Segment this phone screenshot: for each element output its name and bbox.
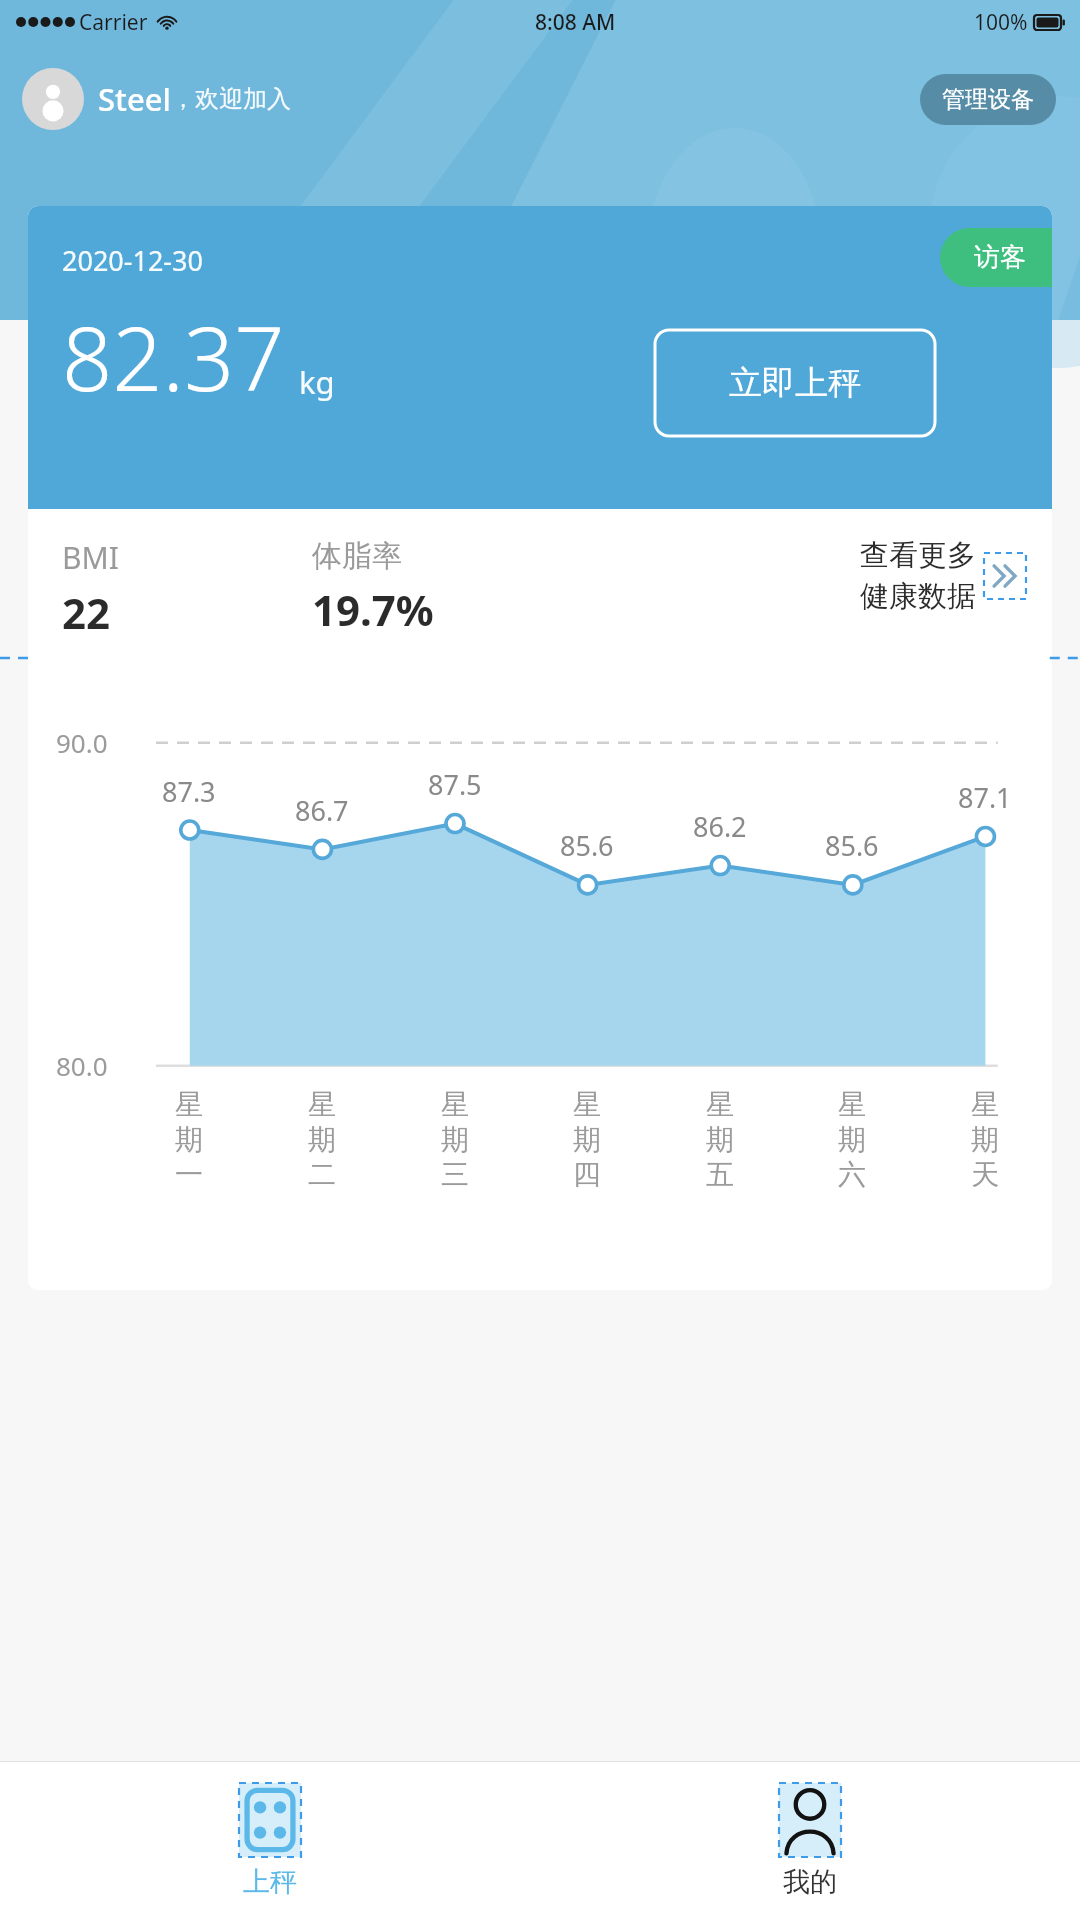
staticText: 体重趋势 xyxy=(28,516,156,556)
staticText: 上秤记录 xyxy=(908,517,1028,555)
staticText: 80.0 xyxy=(56,1048,108,1083)
button[interactable]: 上秤 xyxy=(219,1777,321,1905)
staticText: 六 xyxy=(838,1157,866,1192)
staticText: 体脂率 xyxy=(312,537,402,575)
staticText: 查看更多 xyxy=(860,537,976,574)
staticText: 22 xyxy=(62,584,111,641)
staticText: 85.6 xyxy=(825,827,879,864)
staticText: 五 xyxy=(706,1157,734,1192)
staticText: 星 xyxy=(175,1087,203,1122)
staticText: 上秤 xyxy=(243,1865,297,1899)
staticText: 访客 xyxy=(974,241,1026,274)
staticText: 星 xyxy=(441,1087,469,1122)
staticText: 90.0 xyxy=(56,725,108,760)
staticText: 87.3 xyxy=(162,773,216,810)
staticText: 87.5 xyxy=(428,766,482,803)
staticText: 期 xyxy=(441,1122,469,1157)
other: 我的 xyxy=(779,1783,841,1857)
staticText: 二 xyxy=(308,1157,336,1192)
staticText: 期 xyxy=(838,1122,866,1157)
staticText: 我的 xyxy=(783,1865,837,1899)
staticText: 87.1 xyxy=(958,779,1012,816)
staticText: ，欢迎加入 xyxy=(171,84,291,114)
staticText: 天 xyxy=(971,1157,999,1192)
staticText: 期 xyxy=(971,1122,999,1157)
staticText: 期 xyxy=(706,1122,734,1157)
staticText: 星 xyxy=(838,1087,866,1122)
staticText: 86.2 xyxy=(693,808,747,845)
staticText: 本周 xyxy=(374,604,442,647)
button[interactable]: 我的 xyxy=(759,1777,861,1905)
other: 查看更多健康数据 xyxy=(984,553,1026,599)
button[interactable]: 访客 xyxy=(940,228,1052,287)
staticText: 星 xyxy=(971,1087,999,1122)
staticText: kg xyxy=(299,361,335,403)
staticText: BMI xyxy=(62,537,119,578)
button[interactable]: 管理设备 xyxy=(920,74,1056,125)
staticText: 期 xyxy=(308,1122,336,1157)
button[interactable]: 上秤记录 xyxy=(908,517,1052,555)
staticText: 100% xyxy=(974,8,1028,37)
button[interactable]: 本周 xyxy=(370,604,446,663)
staticText: 86.7 xyxy=(295,792,349,829)
staticText: Carrier xyxy=(79,8,148,37)
staticText: 82.37 xyxy=(62,297,285,417)
staticText: 星 xyxy=(706,1087,734,1122)
staticText: 19.7% xyxy=(312,581,434,638)
staticText: 2020-12-30 xyxy=(62,242,203,279)
staticText: 星 xyxy=(573,1087,601,1122)
staticText: 四 xyxy=(573,1157,601,1192)
staticText: 健康数据 xyxy=(860,578,976,615)
staticText: 管理设备 xyxy=(942,85,1034,114)
other: 上秤 xyxy=(239,1783,301,1857)
button[interactable]: 查看更多 xyxy=(860,537,1026,615)
button[interactable]: 立即上秤 xyxy=(655,330,935,436)
staticText: 星 xyxy=(308,1087,336,1122)
staticText: 期 xyxy=(573,1122,601,1157)
staticText: 8:08 AM xyxy=(535,8,616,37)
staticText: 三 xyxy=(441,1157,469,1192)
staticText: 立即上秤 xyxy=(729,362,861,404)
staticText: 期 xyxy=(175,1122,203,1157)
staticText: 85.6 xyxy=(560,827,614,864)
staticText: Steel xyxy=(98,78,171,120)
staticText: 一 xyxy=(175,1157,203,1192)
